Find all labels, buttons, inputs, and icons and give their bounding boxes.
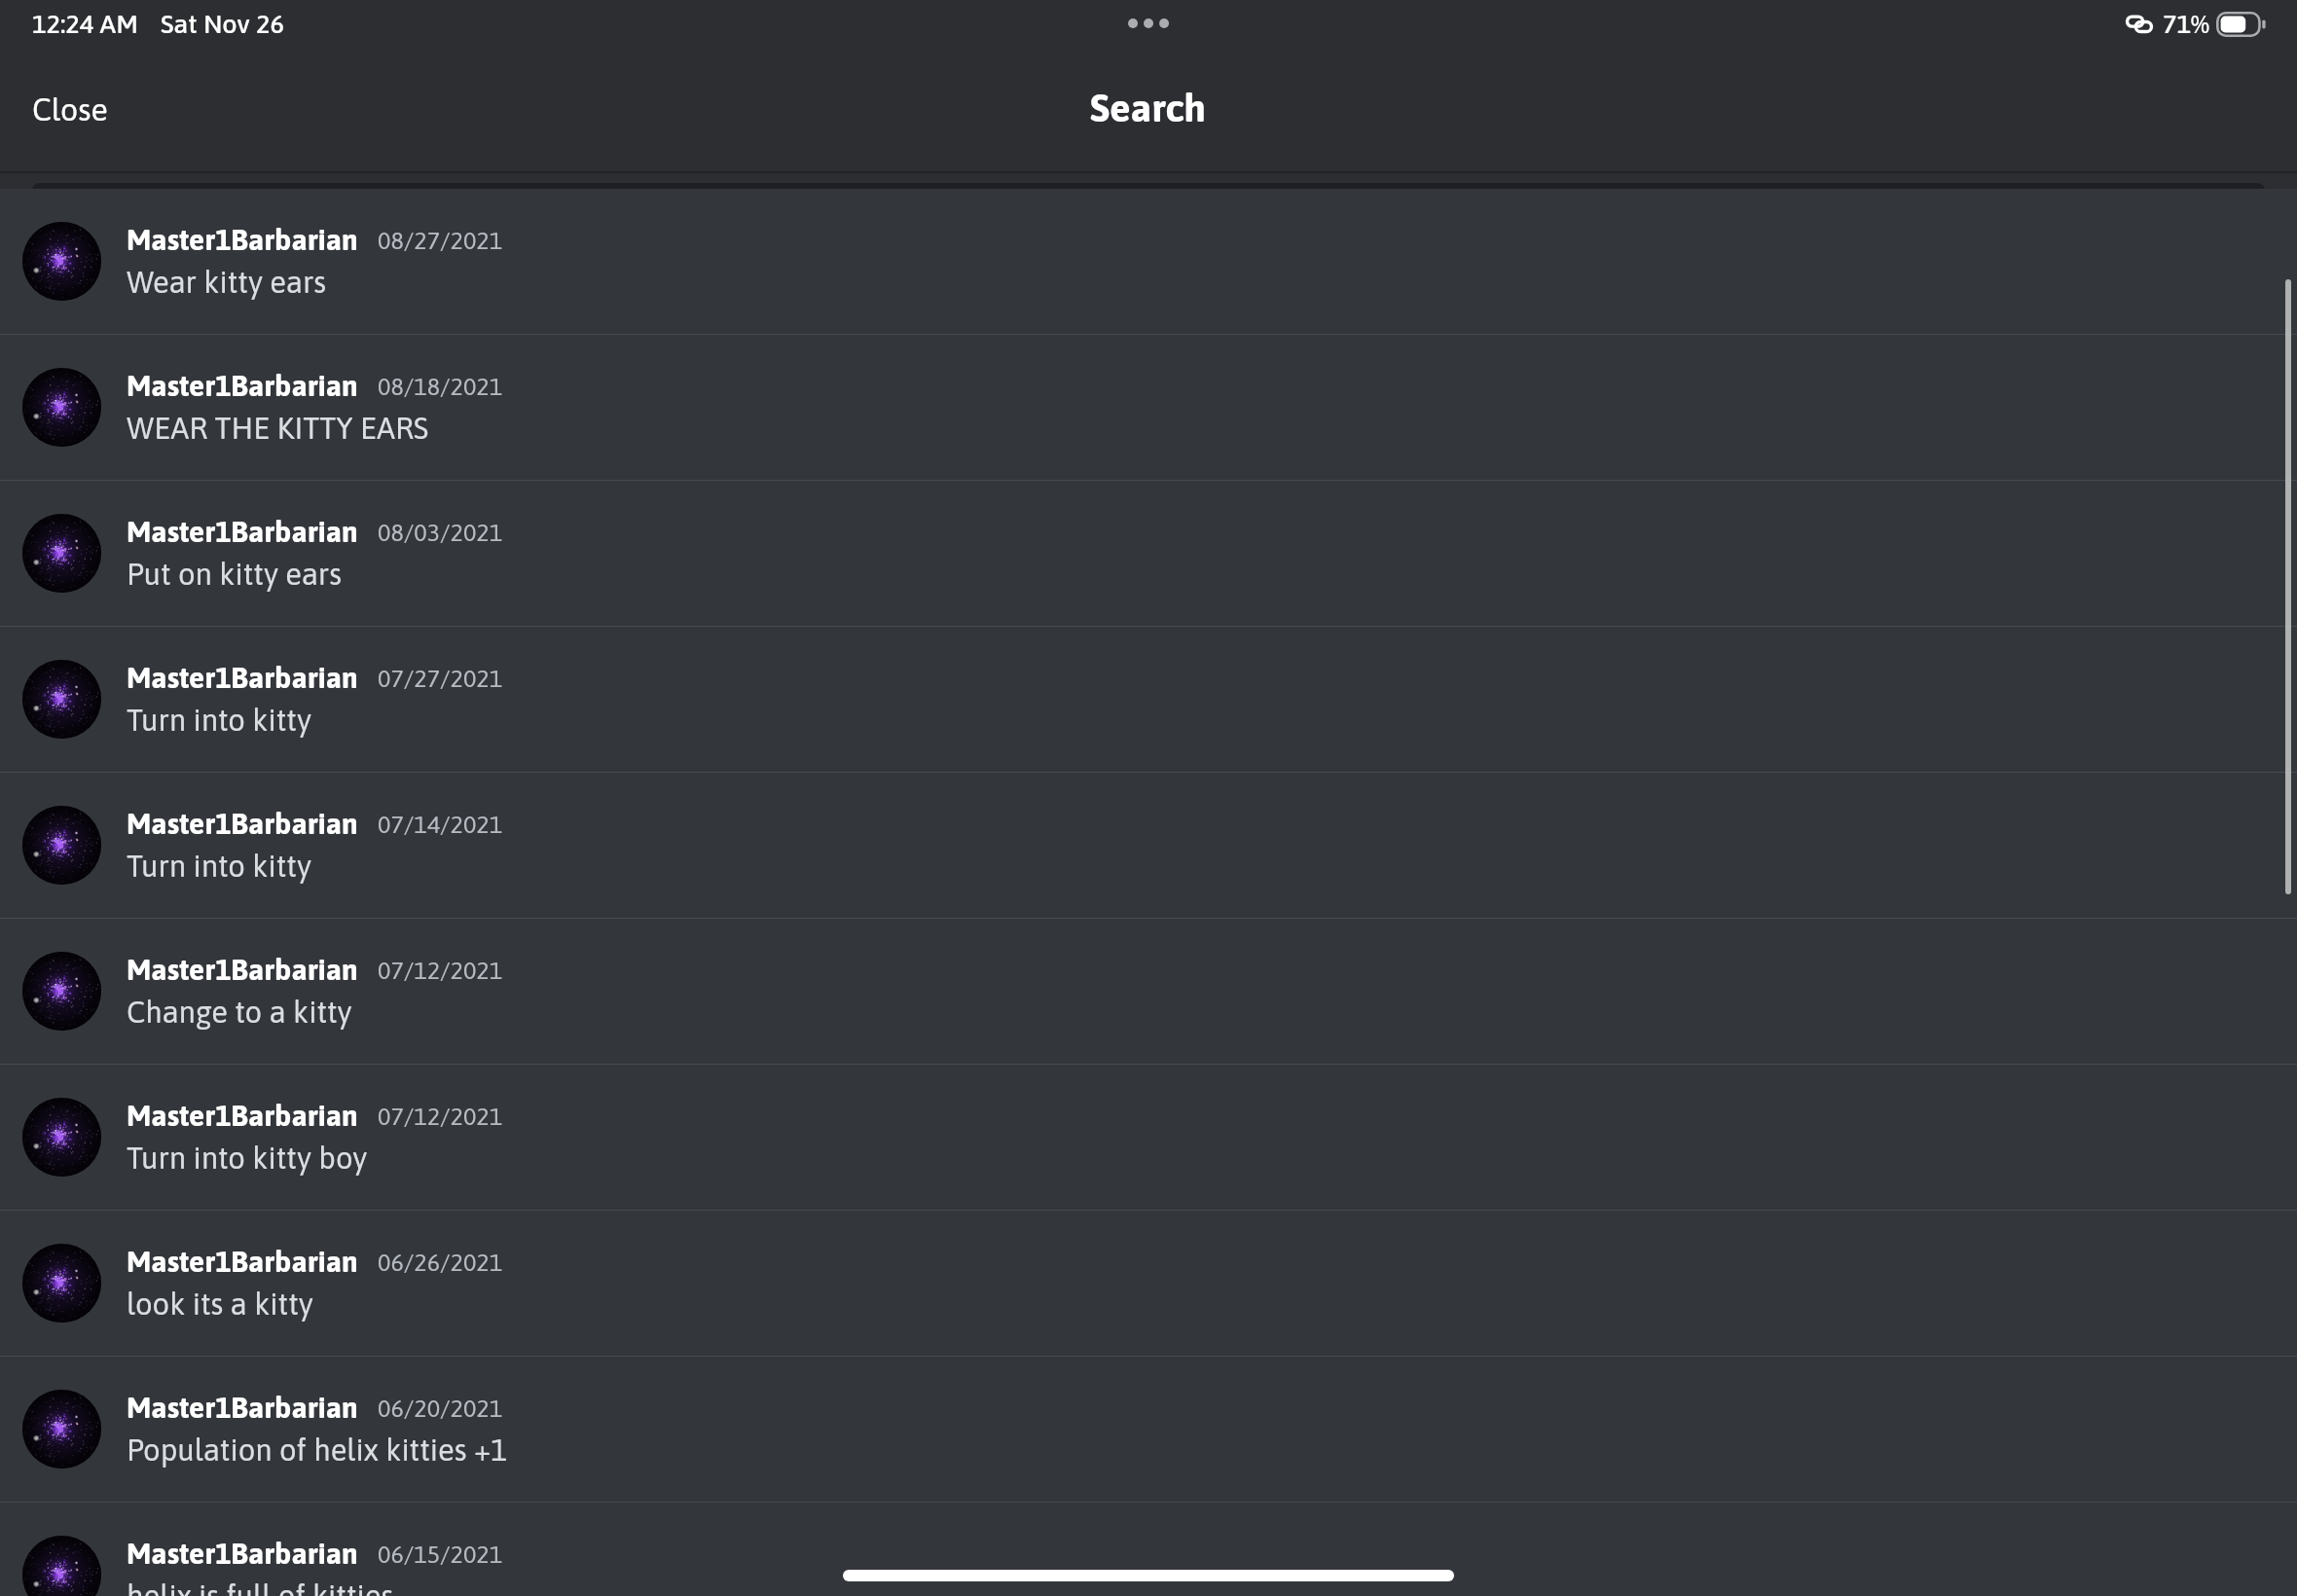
button[interactable]: Close	[0, 70, 140, 149]
staticText: Master1Barbarian	[127, 369, 358, 402]
button[interactable]: Master1Barbarian	[0, 1503, 2297, 1596]
button[interactable]: Master1Barbarian	[0, 481, 2297, 626]
staticText: Put on kitty ears	[127, 557, 342, 592]
staticText: 07/27/2021	[378, 665, 503, 693]
staticText: Master1Barbarian	[127, 223, 358, 256]
button[interactable]: Master1Barbarian	[0, 1065, 2297, 1210]
staticText: Change to a kitty	[127, 995, 352, 1030]
staticText: 06/20/2021	[378, 1395, 503, 1423]
staticText: Master1Barbarian	[127, 515, 358, 548]
other: Screen mirroring	[2126, 16, 2152, 33]
staticText: Master1Barbarian	[127, 807, 358, 840]
staticText: 71%	[2163, 9, 2209, 39]
staticText: Master1Barbarian	[127, 661, 358, 694]
staticText: Master1Barbarian	[127, 1099, 358, 1132]
staticText: helix is full of kitties	[127, 1578, 394, 1596]
staticText: Master1Barbarian	[127, 1391, 358, 1424]
staticText: 12:24 AM	[32, 9, 138, 39]
staticText: Sat Nov 26	[161, 9, 284, 39]
staticText: 08/18/2021	[378, 373, 503, 401]
staticText: 06/15/2021	[378, 1541, 503, 1569]
button[interactable]: Master1Barbarian	[0, 1211, 2297, 1356]
staticText: Close	[32, 91, 108, 127]
staticText: Master1Barbarian	[127, 1537, 358, 1570]
staticText: Turn into kitty	[127, 703, 311, 738]
button[interactable]: Master1Barbarian	[0, 627, 2297, 772]
button[interactable]: Master1Barbarian	[0, 335, 2297, 480]
staticText: 08/03/2021	[378, 519, 503, 547]
staticText: Master1Barbarian	[127, 953, 358, 986]
button[interactable]: Master1Barbarian	[0, 189, 2297, 334]
staticText: look its a kitty	[127, 1287, 313, 1322]
staticText: 07/12/2021	[378, 957, 503, 985]
button[interactable]: Master1Barbarian	[0, 1357, 2297, 1502]
staticText: Turn into kitty	[127, 849, 311, 884]
staticText: WEAR THE KITTY EARS	[127, 411, 429, 446]
staticText: Master1Barbarian	[127, 1245, 358, 1278]
button[interactable]: Master1Barbarian	[0, 919, 2297, 1064]
staticText: 07/14/2021	[378, 811, 503, 839]
staticText: Wear kitty ears	[127, 265, 327, 300]
staticText: Search	[1090, 86, 1207, 130]
staticText: 08/27/2021	[378, 227, 503, 255]
button[interactable]: Master1Barbarian	[0, 773, 2297, 918]
staticText: Turn into kitty boy	[127, 1141, 368, 1176]
staticText: 06/26/2021	[378, 1249, 503, 1277]
staticText: Population of helix kitties +1	[127, 1433, 507, 1468]
staticText: 07/12/2021	[378, 1103, 503, 1131]
other: Battery 71 percent	[2216, 12, 2267, 37]
